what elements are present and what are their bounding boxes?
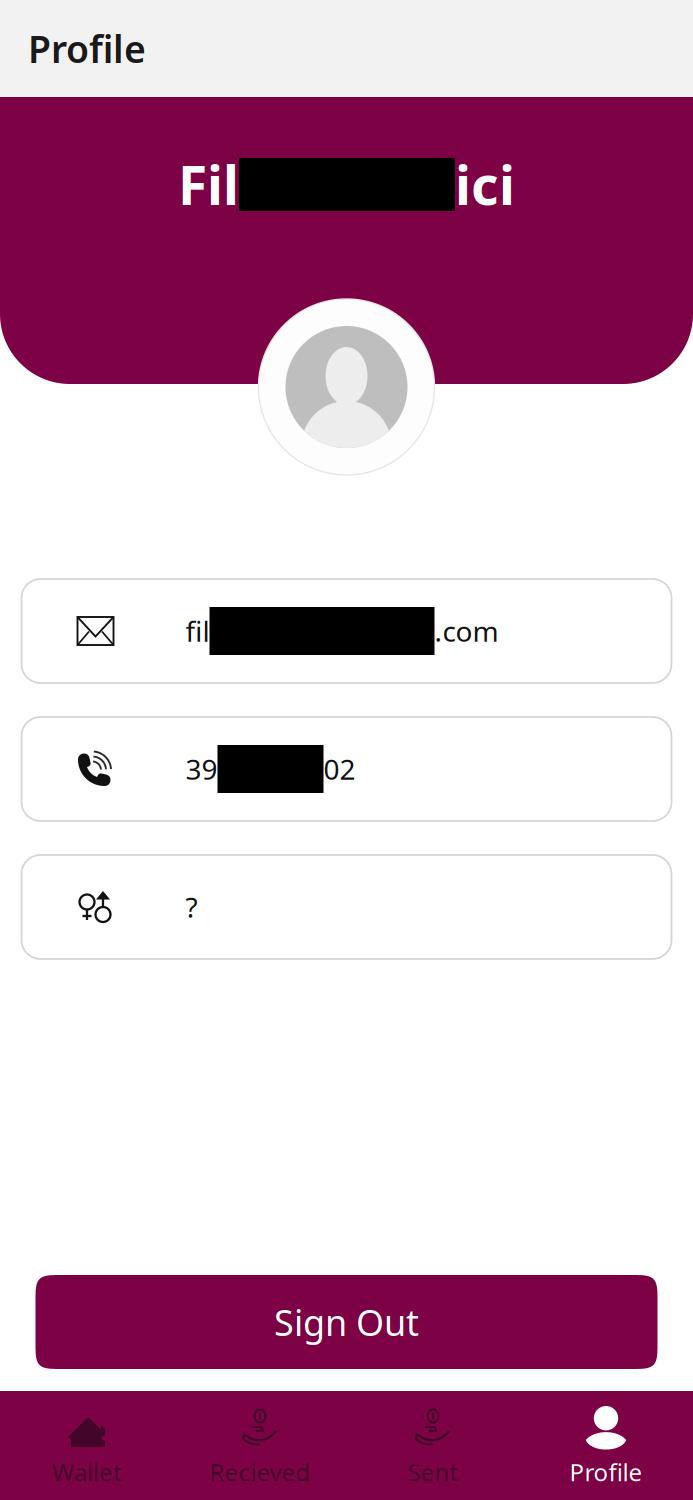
button[interactable]: Wallet <box>0 1391 173 1500</box>
staticText: Sent <box>407 1456 458 1488</box>
button[interactable]: ? <box>21 855 671 959</box>
staticText: 39 <box>185 750 217 788</box>
staticText: Wallet <box>52 1456 122 1488</box>
button[interactable]: Profile <box>519 1391 692 1500</box>
button[interactable]: Recieved <box>173 1391 346 1500</box>
staticText: Fil <box>178 149 239 220</box>
staticText: .com <box>434 612 498 650</box>
button[interactable]: Sent <box>346 1391 519 1500</box>
staticText: 02 <box>323 750 355 788</box>
staticText: Recieved <box>209 1456 310 1488</box>
staticText: Profile <box>28 24 146 73</box>
staticText: ? <box>185 888 197 926</box>
button[interactable]: Sign Out <box>35 1275 657 1369</box>
staticText: ici <box>455 149 515 220</box>
button[interactable]: fil <box>21 579 671 683</box>
staticText: fil <box>185 612 209 650</box>
button[interactable]: 39 <box>21 717 671 821</box>
staticText: Profile <box>569 1456 642 1488</box>
staticText: Sign Out <box>274 1298 419 1346</box>
